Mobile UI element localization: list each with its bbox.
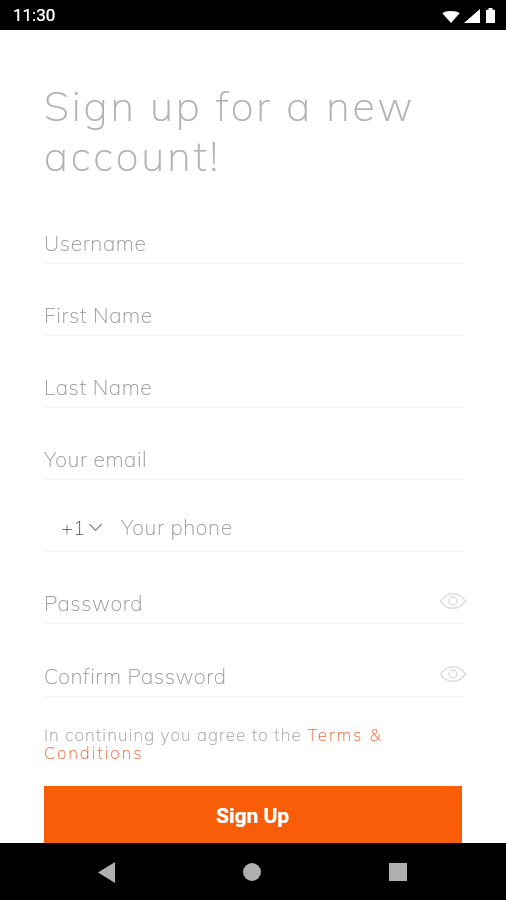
button[interactable]: Confirm Password	[44, 645, 462, 697]
button[interactable]: In continuing you agree to the Terms & C…	[44, 724, 462, 764]
staticText: Password	[44, 590, 144, 616]
button[interactable]: Last Name	[44, 356, 462, 408]
staticText: Confirm Password	[44, 663, 227, 689]
button[interactable]: Sign Up	[44, 786, 462, 843]
button[interactable]: Password	[44, 572, 462, 624]
button[interactable]: Home	[228, 848, 276, 896]
button[interactable]: First Name	[44, 284, 462, 336]
staticText: First Name	[44, 302, 153, 328]
button[interactable]: Back	[82, 848, 130, 896]
staticText: Your phone	[121, 514, 233, 540]
button[interactable]: Your email	[44, 428, 462, 480]
button[interactable]: Recent apps	[374, 848, 422, 896]
staticText: Sign up for a new account!	[44, 80, 462, 181]
staticText: Sign Up	[216, 804, 290, 829]
staticText: Last Name	[44, 374, 153, 400]
staticText: 11:30	[13, 5, 56, 25]
staticText: +1	[61, 515, 85, 540]
button[interactable]: Show password	[436, 584, 470, 618]
staticText: Your email	[44, 446, 148, 472]
button[interactable]: Username	[44, 212, 462, 264]
staticText: Username	[44, 230, 147, 256]
button[interactable]: Show password	[436, 657, 470, 691]
button[interactable]: +1	[44, 515, 120, 540]
